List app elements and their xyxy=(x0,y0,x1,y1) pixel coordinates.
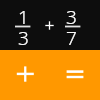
button[interactable]: Equals xyxy=(50,50,100,100)
button[interactable]: Expression one third plus three sevenths xyxy=(0,0,100,50)
staticText: 3 xyxy=(66,4,77,30)
button[interactable]: Add xyxy=(0,50,50,100)
staticText: 1 xyxy=(18,4,29,30)
staticText: 7 xyxy=(66,25,77,51)
staticText: 3 xyxy=(18,25,29,51)
